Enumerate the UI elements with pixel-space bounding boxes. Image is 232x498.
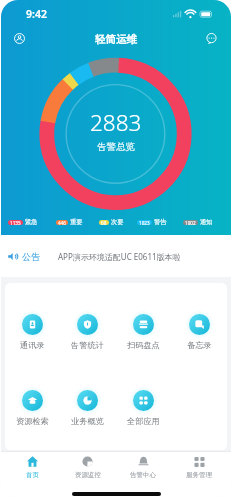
- staticText: 告警中心: [130, 471, 156, 479]
- button[interactable]: 通讯录: [5, 310, 60, 350]
- staticText: 扫码盘点: [127, 340, 160, 350]
- button[interactable]: 告警统计: [60, 310, 115, 350]
- button[interactable]: 全部应用: [115, 386, 171, 426]
- staticText: 备忘录: [187, 340, 212, 350]
- staticText: 资源检索: [16, 416, 49, 426]
- staticText: 告警统计: [71, 340, 104, 350]
- staticText: 首页: [26, 471, 39, 479]
- button[interactable]: 告警中心: [115, 456, 171, 479]
- staticText: 公告: [22, 251, 40, 262]
- staticText: 轻简运维: [95, 33, 137, 46]
- staticText: 次要: [111, 218, 124, 226]
- staticText: APP演示环境适配UC E0611版本啦: [58, 251, 181, 262]
- button[interactable]: 备忘录: [171, 310, 227, 350]
- staticText: 重要: [70, 218, 83, 226]
- staticText: 1002: [185, 220, 196, 225]
- staticText: 业务概览: [71, 416, 104, 426]
- button[interactable]: 公告: [1, 235, 231, 277]
- button[interactable]: Messages: [197, 24, 225, 52]
- staticText: 警告: [154, 218, 167, 226]
- staticText: 告警总览: [97, 141, 135, 153]
- button[interactable]: 业务概览: [60, 386, 115, 426]
- button[interactable]: Profile: [5, 24, 33, 52]
- button[interactable]: 服务管理: [171, 456, 227, 479]
- staticText: 9:42: [26, 7, 47, 21]
- button[interactable]: 扫码盘点: [115, 310, 171, 350]
- staticText: 通知: [200, 218, 213, 226]
- staticText: 紧急: [25, 218, 38, 226]
- staticText: 1023: [139, 220, 150, 225]
- staticText: 2883: [90, 107, 142, 138]
- staticText: 全部应用: [127, 416, 160, 426]
- staticText: 资源监控: [75, 471, 101, 479]
- staticText: 通讯录: [20, 340, 45, 350]
- staticText: 1135: [10, 220, 21, 225]
- staticText: 服务管理: [186, 471, 212, 479]
- staticText: 446: [58, 220, 66, 225]
- button[interactable]: 资源监控: [60, 456, 115, 479]
- button[interactable]: 首页: [5, 456, 60, 479]
- button[interactable]: 资源检索: [5, 386, 60, 426]
- staticText: 68: [101, 220, 107, 225]
